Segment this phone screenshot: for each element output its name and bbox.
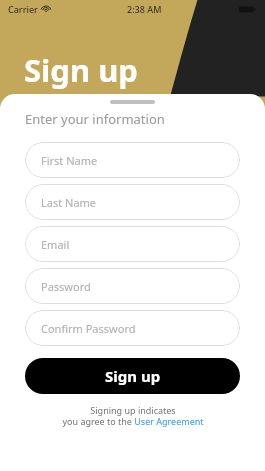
button[interactable]: Sign up [25, 358, 240, 394]
staticText: 2:38 AM [127, 3, 162, 15]
staticText: Enter your information [25, 110, 165, 128]
staticText: Confirm Password [41, 321, 136, 336]
button[interactable]: Last Name [25, 184, 240, 220]
staticText: Sign up [24, 49, 138, 91]
staticText: Password [41, 279, 91, 294]
staticText: Carrier [8, 3, 38, 15]
button[interactable]: Password [25, 268, 240, 304]
staticText: Signing up indicates you agree to the Us… [62, 404, 204, 427]
staticText: Last Name [41, 195, 97, 210]
staticText: Email [41, 237, 70, 252]
button[interactable]: Confirm Password [25, 310, 240, 346]
staticText: First Name [41, 153, 98, 168]
button[interactable]: Signing up indicates you agree to the Us… [0, 404, 265, 427]
button[interactable]: First Name [25, 142, 240, 178]
staticText: Sign up [105, 366, 161, 386]
button[interactable]: Email [25, 226, 240, 262]
